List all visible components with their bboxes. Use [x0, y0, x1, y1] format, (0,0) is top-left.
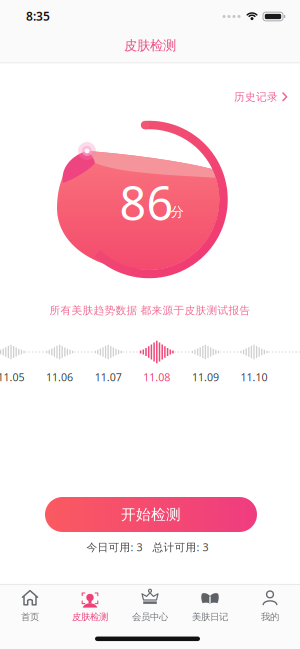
- staticText: 11.10: [240, 370, 267, 384]
- staticText: 11.07: [95, 370, 122, 384]
- staticText: 我的: [261, 611, 279, 623]
- button[interactable]: 会员中心: [121, 586, 179, 626]
- staticText: 11.05: [0, 370, 24, 384]
- button[interactable]: 美肤日记: [181, 586, 239, 626]
- button[interactable]: 开始检测: [45, 497, 257, 532]
- staticText: 86: [119, 171, 173, 233]
- staticText: 首页: [21, 611, 39, 623]
- staticText: 皮肤检测: [124, 37, 176, 54]
- button[interactable]: 首页: [1, 586, 59, 626]
- button[interactable]: 皮肤检测: [61, 586, 119, 626]
- staticText: 11.08: [143, 370, 170, 384]
- staticText: 历史记录: [234, 90, 278, 103]
- staticText: 美肤日记: [192, 611, 228, 623]
- button[interactable]: 11.07: [86, 332, 130, 388]
- staticText: 皮肤检测: [72, 611, 108, 623]
- staticText: 开始检测: [121, 505, 181, 523]
- staticText: 8:35: [26, 8, 50, 24]
- staticText: 分: [170, 204, 183, 220]
- button[interactable]: 我的: [241, 586, 299, 626]
- staticText: 总计可用: 3: [152, 540, 208, 554]
- staticText: 会员中心: [132, 611, 168, 623]
- button[interactable]: 11.05: [0, 332, 33, 388]
- staticText: 今日可用: 3: [86, 540, 142, 554]
- button[interactable]: 11.09: [183, 332, 227, 388]
- staticText: 11.06: [46, 370, 73, 384]
- staticText: 11.09: [192, 370, 219, 384]
- button[interactable]: 11.06: [38, 332, 82, 388]
- staticText: 所有美肤趋势数据 都来源于皮肤测试报告: [49, 304, 250, 317]
- button[interactable]: 11.10: [232, 332, 276, 388]
- button[interactable]: 历史记录: [234, 90, 288, 103]
- button[interactable]: 11.08: [135, 332, 179, 388]
